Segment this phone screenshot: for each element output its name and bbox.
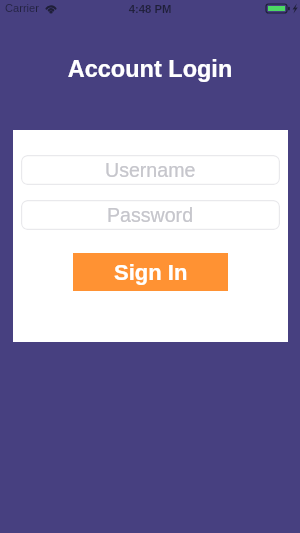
staticText: 4:48 PM xyxy=(0,3,300,16)
button[interactable]: Password xyxy=(21,200,280,230)
other: Battery charging xyxy=(266,4,298,13)
staticText: Carrier xyxy=(5,2,39,14)
staticText: Account Login xyxy=(0,56,300,82)
other: Wi-Fi signal xyxy=(45,4,57,13)
staticText: Password xyxy=(107,204,194,226)
staticText: Sign In xyxy=(114,260,188,285)
staticText: Username xyxy=(105,159,196,181)
button[interactable]: Username xyxy=(21,155,280,185)
button[interactable]: Sign In xyxy=(73,253,228,291)
